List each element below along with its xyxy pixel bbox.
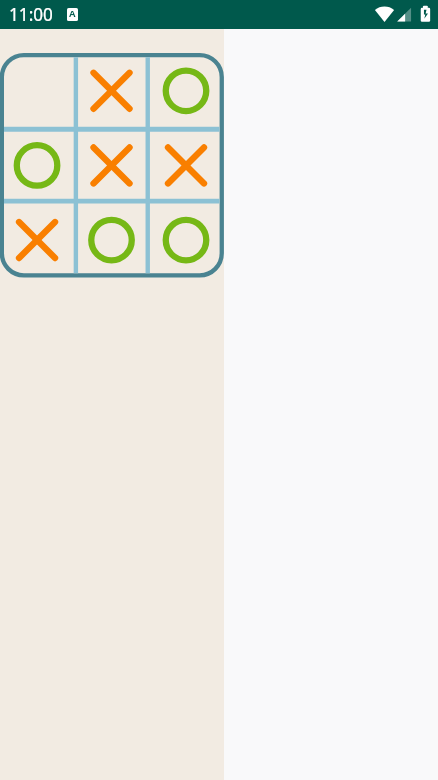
button[interactable]: Row 3 column 3, O — [149, 203, 224, 278]
staticText: 11:00 — [9, 3, 53, 26]
button[interactable]: Row 1 column 3, O — [149, 53, 224, 128]
button[interactable]: Row 3 column 1, X — [0, 203, 74, 278]
button[interactable]: Row 2 column 2, X — [74, 128, 149, 203]
button[interactable]: Row 3 column 2, O — [74, 203, 149, 278]
button[interactable]: Row 1 column 1, empty — [0, 53, 74, 128]
staticText: A — [69, 7, 76, 20]
button[interactable]: Row 2 column 3, X — [149, 128, 224, 203]
button[interactable]: Row 1 column 2, X — [74, 53, 149, 128]
other: Wi-Fi, mobile signal and battery status — [372, 0, 434, 29]
button[interactable]: Row 2 column 1, O — [0, 128, 74, 203]
